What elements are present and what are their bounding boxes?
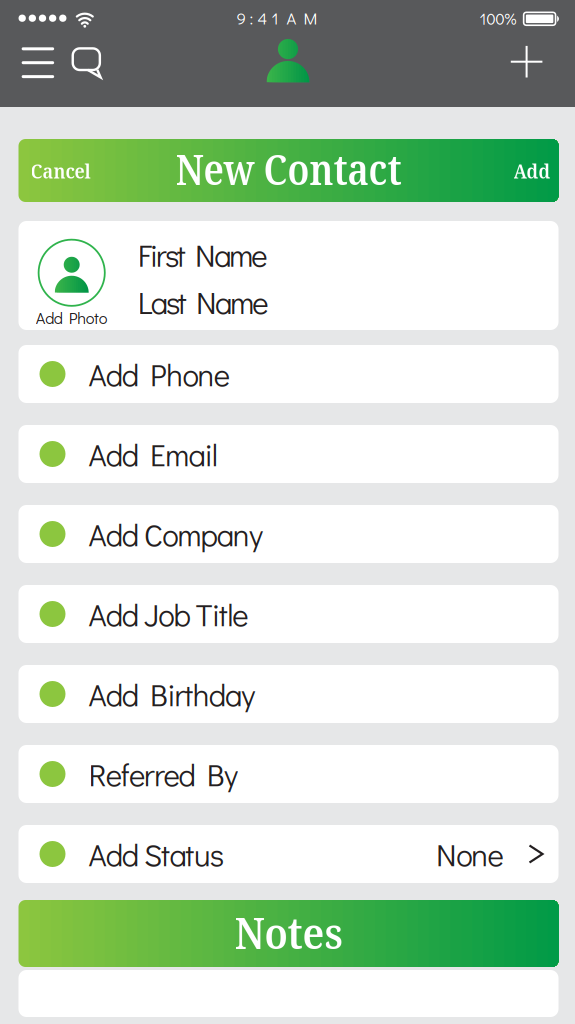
staticText: Last Name xyxy=(138,281,268,322)
button[interactable]: Add Email xyxy=(18,425,558,483)
staticText: Add Status xyxy=(88,834,224,874)
button[interactable]: Add Status xyxy=(18,825,558,883)
staticText: Add Email xyxy=(88,434,218,474)
staticText: First Name xyxy=(138,234,267,275)
button[interactable]: Add Job Title xyxy=(18,585,558,643)
button[interactable]: Add xyxy=(513,156,558,184)
staticText: Notes xyxy=(234,902,342,962)
button[interactable]: Add Photo xyxy=(36,239,108,328)
staticText: Add Phone xyxy=(88,354,230,394)
button[interactable]: Messages xyxy=(71,47,101,78)
staticText: Referred By xyxy=(88,754,238,794)
button[interactable]: Add Company xyxy=(18,505,558,563)
staticText: 100% xyxy=(479,8,516,29)
button[interactable]: Cancel xyxy=(18,156,90,184)
button[interactable]: Add Birthday xyxy=(18,665,558,723)
staticText: None xyxy=(436,834,503,874)
staticText: Add Company xyxy=(88,514,263,554)
staticText: Add Job Title xyxy=(88,594,248,634)
button[interactable]: First Name xyxy=(138,234,267,275)
staticText: Add Birthday xyxy=(88,674,255,714)
staticText: Add Photo xyxy=(36,307,108,328)
button[interactable]: Menu xyxy=(22,47,54,78)
button[interactable]: Add contact xyxy=(511,46,542,77)
staticText: New Contact xyxy=(175,141,401,197)
staticText: Cancel xyxy=(30,156,90,184)
button[interactable]: Referred By xyxy=(18,745,558,803)
staticText: 9 : 4 1 A M xyxy=(236,7,317,29)
button[interactable]: Add Phone xyxy=(18,345,558,403)
button[interactable]: Last Name xyxy=(138,281,268,322)
staticText: Add xyxy=(513,156,550,184)
